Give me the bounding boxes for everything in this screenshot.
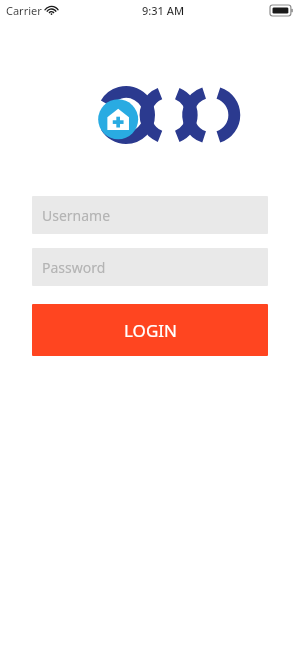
staticText: Username <box>42 206 111 225</box>
staticText: 9:31 AM <box>142 3 185 18</box>
staticText: Password <box>42 258 106 277</box>
staticText: LOGIN <box>124 319 177 342</box>
staticText: Carrier <box>6 3 42 18</box>
button[interactable]: LOGIN <box>32 304 268 356</box>
button[interactable]: Password <box>32 248 268 286</box>
button[interactable]: Username <box>32 196 268 234</box>
